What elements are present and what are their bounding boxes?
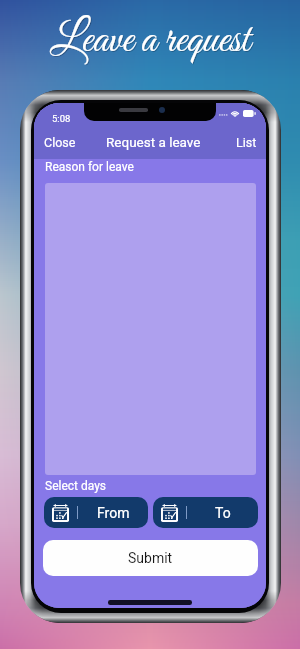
staticText: 5:08 xyxy=(52,113,71,124)
staticText: Leave a request xyxy=(50,14,250,69)
staticText: Select days xyxy=(45,479,107,493)
staticText: To xyxy=(215,505,231,521)
staticText: Request a leave xyxy=(106,134,201,150)
staticText: List xyxy=(236,135,257,150)
button[interactable]: From xyxy=(44,497,148,528)
staticText: Submit xyxy=(128,550,173,566)
button[interactable]: Submit xyxy=(43,540,258,576)
staticText: From xyxy=(97,505,130,521)
staticText: Close xyxy=(44,135,76,150)
button[interactable]: Close xyxy=(34,129,86,156)
staticText: Reason for leave xyxy=(45,160,134,174)
button[interactable]: To xyxy=(153,497,258,528)
staticText: Leave a request xyxy=(51,15,251,70)
button[interactable]: List xyxy=(226,129,266,156)
